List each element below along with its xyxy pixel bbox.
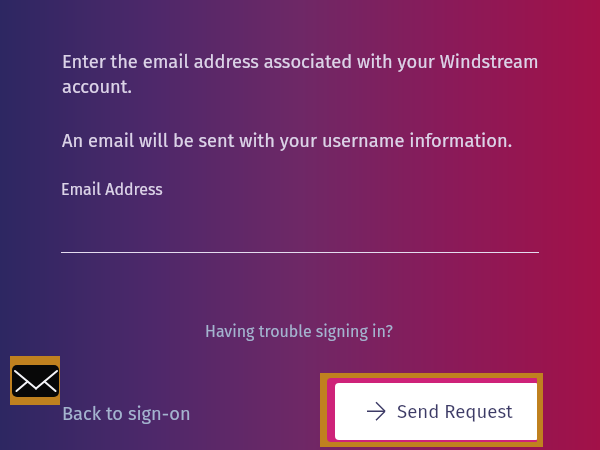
staticText: Enter the email address associated with …: [62, 51, 546, 98]
button[interactable]: Back to sign-on: [56, 398, 197, 430]
staticText: Having trouble signing in?: [205, 322, 393, 341]
button[interactable]: Having trouble signing in?: [198, 317, 400, 346]
button[interactable]: Send Request: [320, 373, 543, 447]
staticText: Back to sign-on: [62, 403, 191, 425]
staticText: Email Address: [61, 180, 163, 199]
staticText: Send Request: [397, 401, 513, 423]
button[interactable]: Email: [10, 356, 60, 405]
staticText: An email will be sent with your username…: [62, 130, 546, 152]
